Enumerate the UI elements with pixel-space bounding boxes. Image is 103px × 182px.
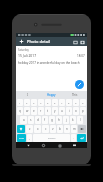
staticText: r — [40, 109, 42, 113]
staticText: m — [73, 127, 76, 131]
button[interactable]: y — [52, 107, 58, 115]
staticText: . — [73, 136, 74, 140]
staticText: Happy — [47, 93, 56, 97]
button[interactable]: x — [34, 125, 41, 133]
staticText: 8 — [68, 101, 70, 104]
button[interactable]: 2 — [24, 99, 30, 106]
staticText: s — [30, 118, 32, 122]
button[interactable]: k — [70, 116, 76, 124]
staticText: i — [69, 109, 70, 113]
button[interactable]: 9 — [73, 99, 79, 106]
button[interactable]: a — [20, 116, 27, 124]
staticText: v — [52, 127, 54, 131]
button[interactable]: t — [45, 107, 51, 115]
staticText: ?123 — [19, 137, 24, 140]
button[interactable]: o — [73, 107, 79, 115]
button[interactable]: v — [50, 125, 56, 133]
staticText: 2 — [26, 101, 28, 104]
staticText: x — [37, 127, 39, 131]
button[interactable]: l — [77, 116, 83, 124]
button[interactable]: Happy — [39, 91, 63, 98]
button[interactable]: Recents — [57, 143, 62, 148]
staticText: Saturday — [18, 48, 29, 52]
staticText: , — [29, 136, 30, 140]
staticText: e — [33, 109, 35, 113]
button[interactable]: . — [71, 134, 76, 142]
button[interactable]: m — [71, 125, 77, 133]
staticText: y — [54, 109, 56, 113]
button[interactable]: 4 — [38, 99, 44, 106]
staticText: Photo detail — [27, 39, 71, 44]
button[interactable]: w — [24, 107, 30, 115]
staticText: holiday 2017 in wonderful day on the bea… — [18, 61, 80, 65]
button[interactable]: Home — [41, 143, 46, 148]
staticText: 6 — [54, 101, 56, 104]
staticText: n — [66, 127, 68, 131]
button[interactable]: Backspace — [78, 125, 86, 133]
button[interactable]: 0 — [80, 99, 86, 106]
staticText: 5 — [47, 101, 49, 104]
button[interactable]: 5 — [45, 99, 51, 106]
staticText: 18:07 — [77, 54, 85, 58]
button[interactable]: , — [27, 134, 32, 142]
button[interactable]: h — [56, 116, 62, 124]
staticText: English — [48, 137, 56, 140]
staticText: w — [26, 109, 29, 113]
staticText: h — [58, 118, 60, 122]
staticText: This — [72, 93, 78, 97]
staticText: u — [61, 109, 63, 113]
button[interactable]: Camera — [79, 38, 86, 46]
staticText: 1 — [19, 101, 21, 104]
button[interactable]: c — [42, 125, 49, 133]
button[interactable]: Shift — [17, 125, 25, 133]
staticText: f — [44, 118, 46, 122]
button[interactable]: d — [35, 116, 41, 124]
button[interactable]: Gallery — [71, 38, 79, 46]
button[interactable]: 1 — [17, 99, 23, 106]
button[interactable]: This — [63, 91, 87, 98]
staticText: 0 — [82, 101, 84, 104]
staticText: 7 — [61, 101, 63, 104]
button[interactable]: Edit — [75, 80, 84, 89]
staticText: o — [75, 109, 77, 113]
button[interactable]: i — [66, 107, 72, 115]
button[interactable]: Back — [26, 143, 31, 148]
button[interactable]: g — [49, 116, 55, 124]
button[interactable]: I — [16, 91, 39, 98]
staticText: z — [29, 127, 31, 131]
button[interactable]: Add — [18, 38, 25, 45]
staticText: p — [82, 109, 84, 113]
button[interactable]: z — [26, 125, 33, 133]
button[interactable]: 3 — [31, 99, 37, 106]
button[interactable]: Space — [33, 134, 70, 142]
button[interactable]: f — [42, 116, 48, 124]
staticText: j — [66, 118, 67, 122]
button[interactable]: u — [59, 107, 65, 115]
button[interactable]: Hide keyboard — [72, 143, 77, 148]
button[interactable]: 8 — [66, 99, 72, 106]
staticText: d — [37, 118, 39, 122]
staticText: g — [51, 118, 53, 122]
staticText: 4 — [40, 101, 42, 104]
button[interactable]: j — [63, 116, 69, 124]
staticText: 3 — [33, 101, 35, 104]
button[interactable]: Symbols — [17, 134, 26, 142]
button[interactable]: p — [80, 107, 86, 115]
button[interactable]: q — [17, 107, 23, 115]
button[interactable]: e — [31, 107, 37, 115]
button[interactable]: Enter — [77, 134, 86, 142]
button[interactable]: s — [28, 116, 34, 124]
staticText: b — [59, 127, 61, 131]
staticText: I — [27, 93, 28, 97]
button[interactable]: 6 — [52, 99, 58, 106]
staticText: a — [23, 118, 25, 122]
button[interactable]: n — [64, 125, 70, 133]
staticText: 15 Juli 2017 — [18, 53, 77, 58]
button[interactable]: r — [38, 107, 44, 115]
staticText: k — [72, 118, 74, 122]
button[interactable]: b — [57, 125, 63, 133]
staticText: t — [47, 109, 49, 113]
button[interactable]: 7 — [59, 99, 65, 106]
staticText: 9 — [75, 101, 77, 104]
staticText: l — [80, 118, 81, 122]
